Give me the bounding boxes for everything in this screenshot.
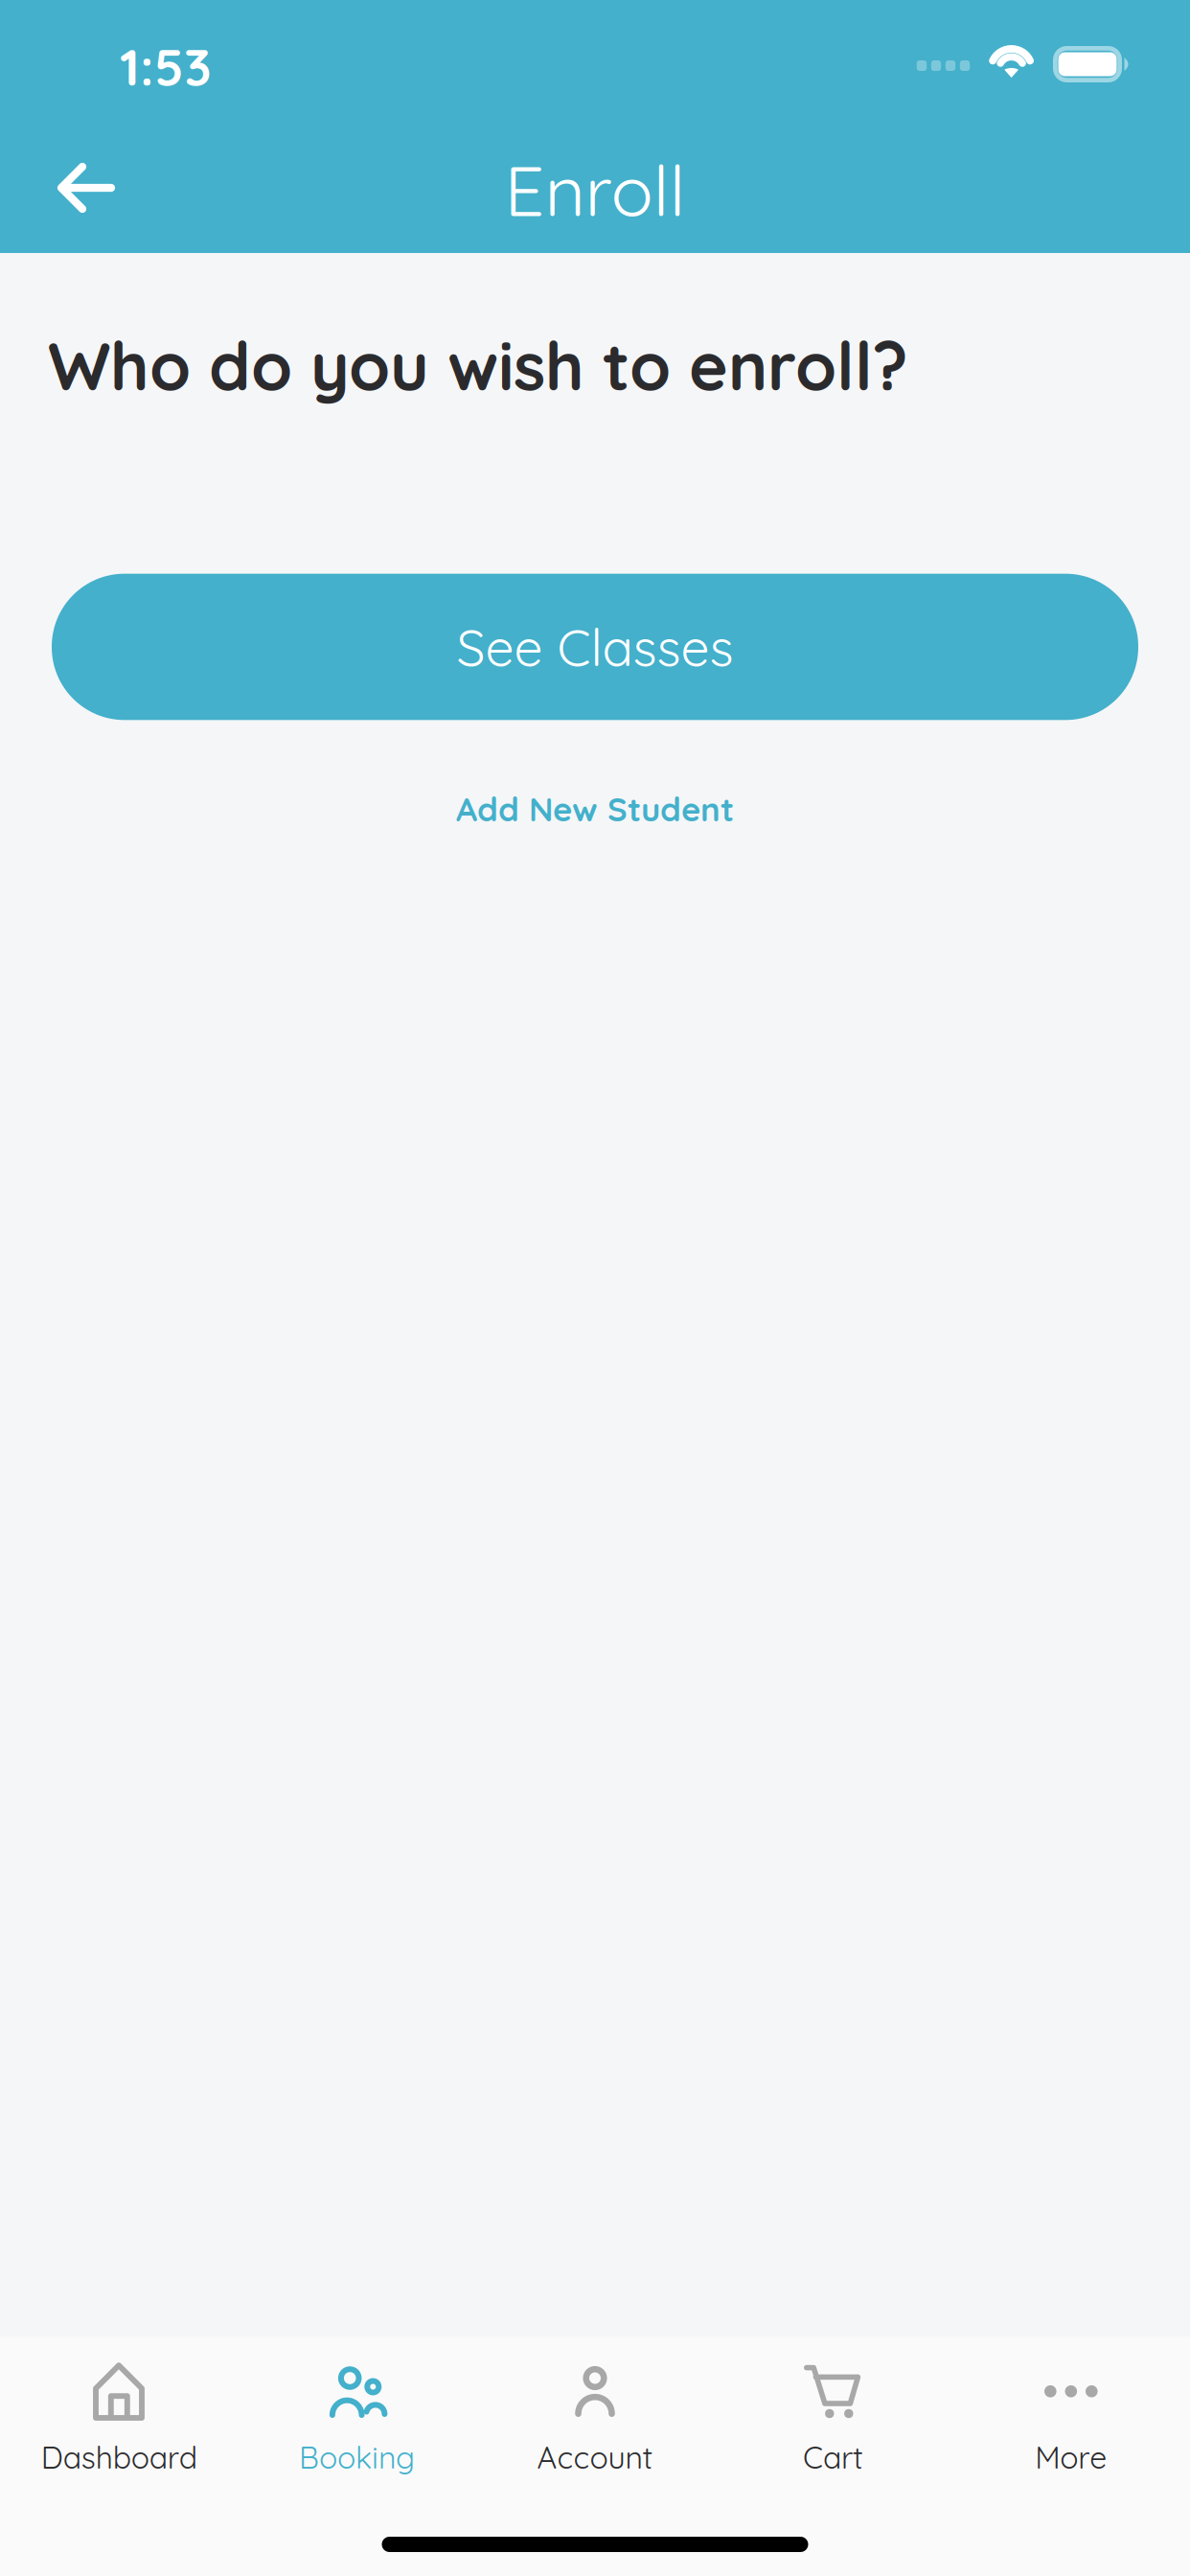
button[interactable]: Booking xyxy=(238,2336,476,2490)
staticText: Enroll xyxy=(504,146,686,234)
button[interactable]: Cart xyxy=(714,2336,952,2490)
button[interactable]: See Classes xyxy=(52,574,1138,720)
staticText: Booking xyxy=(299,2438,415,2476)
button[interactable]: More xyxy=(952,2336,1190,2490)
button[interactable]: Back xyxy=(32,133,145,246)
staticText: Who do you wish to enroll? xyxy=(48,324,908,407)
button[interactable]: Add New Student xyxy=(0,769,1190,849)
staticText: Cart xyxy=(803,2438,863,2476)
staticText: 1:53 xyxy=(120,34,212,98)
staticText: Account xyxy=(537,2438,653,2476)
staticText: Add New Student xyxy=(456,788,734,830)
staticText: More xyxy=(1035,2438,1107,2476)
button[interactable]: Dashboard xyxy=(0,2336,238,2490)
button[interactable]: Account xyxy=(476,2336,714,2490)
staticText: See Classes xyxy=(457,615,733,679)
staticText: Dashboard xyxy=(41,2438,197,2476)
